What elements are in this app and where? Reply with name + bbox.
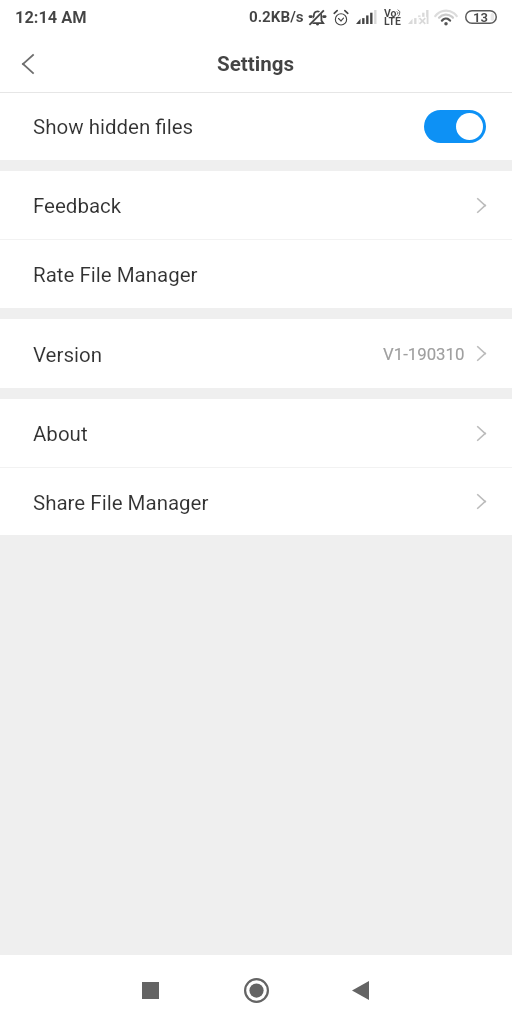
staticText: Feedback xyxy=(33,194,122,218)
staticText: LTE xyxy=(384,15,401,27)
staticText: About xyxy=(33,422,88,446)
button[interactable]: Show hidden files xyxy=(0,93,512,160)
button[interactable]: Share File Manager xyxy=(0,468,512,535)
button[interactable]: Back xyxy=(4,40,52,88)
button[interactable]: Home xyxy=(232,966,280,1014)
button[interactable]: Recent apps xyxy=(126,966,174,1014)
staticText: Settings xyxy=(217,52,295,76)
staticText: 12:14 AM xyxy=(15,8,87,27)
button[interactable]: About xyxy=(0,399,512,467)
button[interactable]: Version xyxy=(0,319,512,388)
staticText: Share File Manager xyxy=(33,491,209,515)
staticText: Version xyxy=(33,343,103,367)
button[interactable]: Feedback xyxy=(0,171,512,239)
staticText: V1-190310 xyxy=(383,344,465,364)
button[interactable]: Rate File Manager xyxy=(0,240,512,308)
button[interactable]: Back xyxy=(336,966,384,1014)
staticText: Vo xyxy=(384,7,397,19)
staticText: Show hidden files xyxy=(33,115,194,139)
staticText: 0.2KB/s xyxy=(249,8,304,26)
staticText: Rate File Manager xyxy=(33,263,198,287)
staticText: 13 xyxy=(473,10,488,24)
